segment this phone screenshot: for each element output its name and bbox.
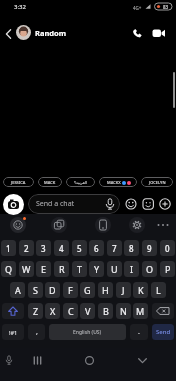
button[interactable]: 7 [107,240,122,256]
button[interactable]: D [45,282,60,298]
button[interactable] [3,194,24,215]
button[interactable]: C [63,303,78,319]
button[interactable]: 3 [36,240,51,256]
button[interactable]: E [36,261,51,277]
button[interactable] [132,28,143,39]
staticText: العربية؟ [74,180,88,185]
button[interactable]: Send [152,324,174,340]
button[interactable] [5,355,13,366]
button[interactable]: Send a chat [28,194,120,214]
staticText: R [59,263,65,275]
staticText: P [165,263,171,275]
button[interactable]: 5 [72,240,87,256]
button[interactable] [16,25,31,40]
button[interactable] [2,303,24,319]
staticText: . [138,327,140,337]
button[interactable]: K [133,282,148,298]
button[interactable]: U [107,261,122,277]
button[interactable]: MACK [38,177,62,187]
staticText: , [36,327,38,337]
button[interactable]: V [80,303,95,319]
button[interactable]: JESSICA [3,177,34,187]
staticText: M [136,305,145,317]
button[interactable]: N [116,303,131,319]
button[interactable]: . [130,324,148,340]
staticText: I [130,263,134,275]
staticText: K [138,284,144,296]
button[interactable] [10,217,26,233]
staticText: Q [5,263,13,275]
button[interactable] [125,198,137,210]
button[interactable]: Q [1,261,16,277]
button[interactable]: 2 [19,240,34,256]
button[interactable] [152,303,174,319]
button[interactable]: Y [89,261,104,277]
staticText: B [103,305,109,317]
staticText: Z [33,305,39,317]
staticText: U [111,263,118,275]
button[interactable]: H [98,282,113,298]
button[interactable]: M [133,303,148,319]
button[interactable]: JOCELYN [141,177,173,187]
button[interactable] [95,217,111,233]
button[interactable] [138,358,147,364]
button[interactable]: I [124,261,139,277]
staticText: V [85,305,91,317]
staticText: E [41,263,47,275]
staticText: 83 [163,4,169,10]
button[interactable] [152,28,166,39]
button[interactable] [142,198,155,210]
staticText: O [146,263,154,275]
button[interactable]: X [45,303,60,319]
staticText: 3 [41,243,46,254]
button[interactable]: 4 [54,240,69,256]
staticText: C [68,305,74,317]
button[interactable]: P [160,261,175,277]
button[interactable]: R [54,261,69,277]
staticText: W [22,263,31,275]
button[interactable]: J [116,282,131,298]
button[interactable]: 1 [1,240,16,256]
staticText: Y [94,263,100,275]
staticText: S [33,284,38,296]
button[interactable]: , [28,324,45,340]
button[interactable]: S [28,282,43,298]
staticText: 1 [6,243,11,254]
button[interactable]: Z [28,303,43,319]
button[interactable]: English (US) [49,324,126,340]
button[interactable] [129,217,145,233]
staticText: JESSICA [11,180,26,185]
button[interactable]: G [80,282,95,298]
staticText: JOCELYN [149,180,166,185]
button[interactable]: العربية؟ [66,177,95,187]
button[interactable]: B [98,303,113,319]
button[interactable] [85,356,94,365]
button[interactable]: 0 [160,240,175,256]
staticText: Send [156,328,171,336]
button[interactable]: 6 [89,240,104,256]
staticText: G [84,284,91,296]
button[interactable]: T [72,261,87,277]
staticText: 6 [94,243,99,254]
button[interactable]: F [63,282,78,298]
staticText: N [120,305,127,317]
staticText: !#1 [9,329,18,336]
button[interactable] [5,29,12,39]
button[interactable]: 8 [124,240,139,256]
button[interactable]: A [10,282,25,298]
button[interactable] [51,217,67,233]
button[interactable]: W [19,261,34,277]
button[interactable]: MACKX [99,177,137,187]
staticText: L [156,284,161,296]
staticText: D [49,284,56,296]
button[interactable] [33,356,42,365]
button[interactable] [156,221,170,229]
staticText: 3:32 [14,3,26,11]
button[interactable] [159,198,171,210]
button[interactable]: O [142,261,157,277]
button[interactable]: !#1 [2,324,24,340]
button[interactable]: L [151,282,166,298]
staticText: X [50,305,56,317]
button[interactable]: 9 [142,240,157,256]
staticText: 7 [112,243,117,254]
